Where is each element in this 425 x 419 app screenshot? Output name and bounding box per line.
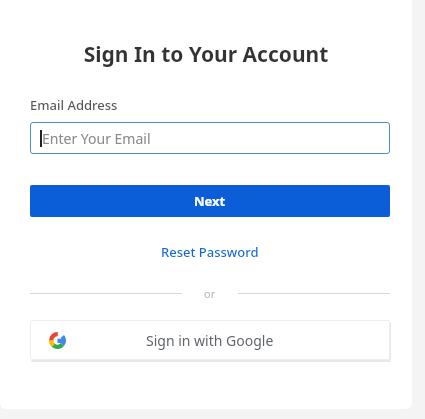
staticText: or xyxy=(204,286,216,300)
button[interactable]: Enter Your Email xyxy=(30,122,390,154)
staticText: Email Address xyxy=(30,96,118,114)
staticText: Sign in with Google xyxy=(146,331,274,350)
button[interactable]: Next xyxy=(30,185,390,217)
button[interactable]: Google logo xyxy=(30,320,390,360)
staticText: Enter Your Email xyxy=(42,129,151,148)
staticText: Reset Password xyxy=(161,243,259,261)
staticText: Sign In to Your Account xyxy=(18,40,394,69)
staticText: Next xyxy=(194,192,226,210)
other: Google logo xyxy=(49,332,66,349)
button[interactable]: Reset Password xyxy=(157,241,263,263)
